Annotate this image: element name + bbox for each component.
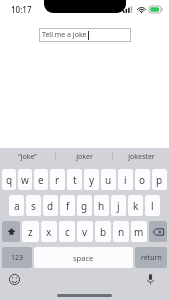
button[interactable]: Emoji xyxy=(8,273,21,286)
button[interactable]: g xyxy=(77,195,92,216)
staticText: c xyxy=(65,225,70,239)
button[interactable]: joker xyxy=(56,148,112,165)
staticText: 10:17 xyxy=(11,4,32,15)
button[interactable]: 123 xyxy=(2,247,32,268)
button[interactable]: a xyxy=(9,195,24,216)
button[interactable]: return xyxy=(135,247,167,268)
button[interactable]: s xyxy=(26,195,41,216)
button[interactable]: x xyxy=(41,221,57,242)
button[interactable]: m xyxy=(131,221,147,242)
staticText: e xyxy=(38,173,44,187)
button[interactable]: Tell me a joke xyxy=(39,28,131,42)
button[interactable]: f xyxy=(60,195,75,216)
button[interactable]: h xyxy=(94,195,109,216)
button[interactable]: l xyxy=(145,195,160,216)
staticText: p xyxy=(156,173,163,187)
staticText: v xyxy=(82,225,88,239)
staticText: y xyxy=(89,173,95,187)
staticText: x xyxy=(46,225,52,239)
staticText: r xyxy=(55,173,60,187)
button[interactable]: v xyxy=(77,221,93,242)
staticText: w xyxy=(21,173,29,187)
staticText: s xyxy=(31,199,36,213)
button[interactable]: y xyxy=(84,169,99,190)
button[interactable]: Backspace xyxy=(149,221,167,242)
button[interactable]: Dictation xyxy=(144,273,157,286)
staticText: o xyxy=(139,173,146,187)
button[interactable]: r xyxy=(50,169,65,190)
button[interactable]: Shift xyxy=(2,221,20,242)
staticText: i xyxy=(124,173,127,187)
staticText: 123 xyxy=(11,253,24,263)
button[interactable]: t xyxy=(67,169,82,190)
staticText: n xyxy=(118,225,125,239)
staticText: joker xyxy=(76,152,93,162)
staticText: return xyxy=(141,253,162,263)
button[interactable]: n xyxy=(113,221,129,242)
staticText: l xyxy=(151,199,154,213)
button[interactable]: z xyxy=(22,221,39,242)
button[interactable]: q xyxy=(2,169,16,190)
staticText: jokester xyxy=(128,152,155,162)
button[interactable]: “joke” xyxy=(0,148,55,165)
staticText: k xyxy=(133,199,139,213)
staticText: t xyxy=(73,173,77,187)
staticText: z xyxy=(28,225,33,239)
staticText: g xyxy=(81,199,88,213)
staticText: f xyxy=(66,199,70,213)
button[interactable]: jokester xyxy=(113,148,169,165)
staticText: a xyxy=(14,199,20,213)
staticText: u xyxy=(105,173,112,187)
button[interactable]: p xyxy=(152,169,167,190)
staticText: d xyxy=(47,199,54,213)
button[interactable]: c xyxy=(59,221,75,242)
button[interactable]: space xyxy=(34,247,133,268)
button[interactable]: k xyxy=(128,195,143,216)
button[interactable]: j xyxy=(111,195,126,216)
staticText: space xyxy=(73,253,94,263)
button[interactable]: u xyxy=(101,169,116,190)
staticText: Tell me a joke xyxy=(42,30,87,40)
button[interactable]: o xyxy=(135,169,150,190)
staticText: j xyxy=(117,199,120,213)
button[interactable]: i xyxy=(118,169,133,190)
button[interactable]: d xyxy=(43,195,58,216)
staticText: “joke” xyxy=(18,152,37,162)
staticText: h xyxy=(98,199,105,213)
staticText: b xyxy=(100,225,107,239)
staticText: q xyxy=(6,173,13,187)
button[interactable]: e xyxy=(34,169,48,190)
button[interactable]: b xyxy=(95,221,111,242)
button[interactable]: w xyxy=(18,169,32,190)
staticText: m xyxy=(134,225,144,239)
